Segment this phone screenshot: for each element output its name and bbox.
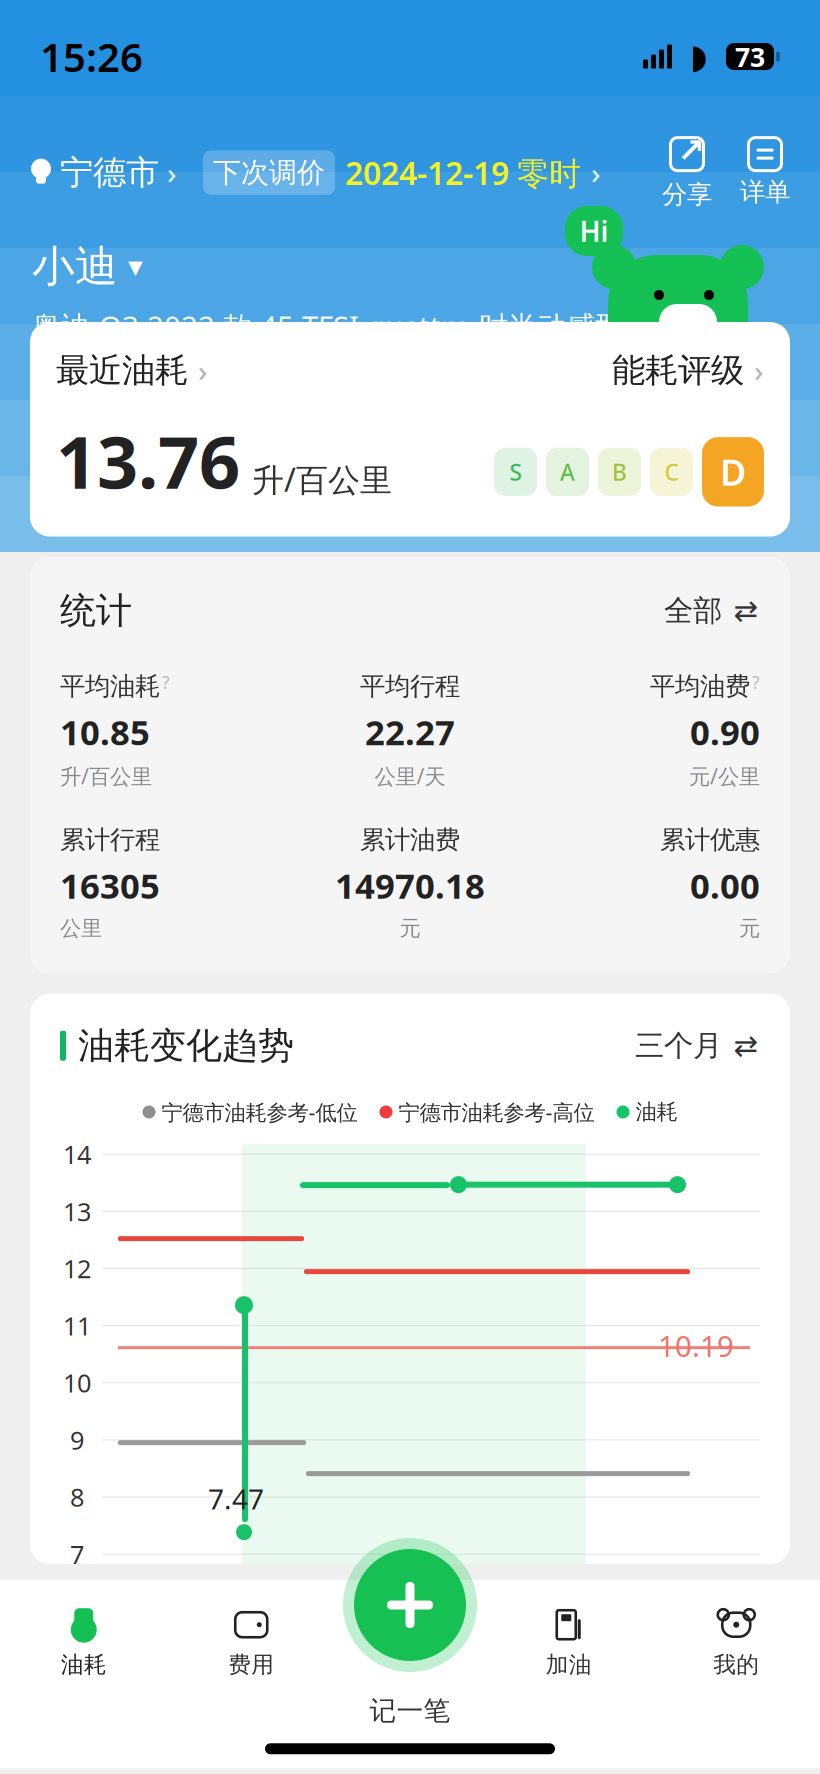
staticText: › [198,351,208,390]
staticText: S [509,457,521,487]
staticText: A [560,457,575,487]
staticText: › [591,153,601,192]
staticText: 10 [63,1366,91,1399]
staticText: 元 [399,915,420,942]
staticText: D [720,448,746,496]
staticText: ⇄ [733,1029,758,1062]
staticText: 13 [63,1194,91,1228]
staticText: B [612,457,627,487]
staticText: 累计优惠 [660,824,760,855]
staticText: ⇄ [733,594,758,627]
button[interactable]: 宁德市 [30,152,177,193]
staticText: 油耗变化趋势 [78,1024,294,1068]
staticText: ? [162,671,170,694]
staticText: 元 [739,915,760,942]
staticText: 13.76 [56,413,240,508]
staticText: 宁德市 [60,152,159,193]
staticText: 8 [70,1480,84,1514]
staticText: 加油 [546,1651,592,1678]
staticText: 累计行程 [60,824,160,855]
staticText: 累计油费 [360,824,460,855]
staticText: 14 [63,1137,91,1171]
staticText: 我的 [713,1651,759,1678]
button[interactable]: 我的 [652,1602,820,1684]
button[interactable]: 三个月 [635,1028,760,1064]
staticText: 7.47 [208,1480,264,1517]
staticText: 73 [735,39,765,74]
staticText: 平均油耗 [60,671,160,702]
staticText: › [754,351,764,390]
staticText: Hi [579,212,608,250]
staticText: 公里 [60,915,102,942]
staticText: ? [752,671,760,694]
button[interactable]: 最近油耗 [56,350,208,391]
staticText: 10.85 [60,709,150,755]
staticText: 宁德市油耗参考-高位 [398,1098,594,1126]
staticText: 油耗 [61,1651,107,1678]
staticText: ◗ [690,38,708,75]
staticText: 油耗 [635,1099,677,1125]
staticText: C [664,457,678,487]
staticText: 2024-12-19 零时 [345,151,581,194]
staticText: ▾ [128,250,143,283]
button[interactable]: 能耗评级 [612,350,764,391]
staticText: 宁德市油耗参考-低位 [161,1098,357,1126]
button[interactable]: 详单 [740,138,790,208]
staticText: 11 [63,1309,91,1342]
staticText: 平均油费 [650,671,750,702]
staticText: 小迪 [32,240,118,293]
staticText: 统计 [60,589,132,633]
staticText: 升/百公里 [60,762,152,790]
staticText: 最近油耗 [56,350,188,391]
button[interactable]: 小迪 [32,240,143,293]
button[interactable]: 记一笔 [343,1538,477,1672]
staticText: 10.19 [658,1326,734,1365]
staticText: 分享 [662,179,712,210]
staticText: 费用 [228,1651,274,1678]
staticText: 元/公里 [689,762,760,790]
staticText: 22.27 [365,709,455,755]
staticText: 能耗评级 [612,350,744,391]
staticText: 奥迪 Q3 2022 款 45 TFSI quattro 时尚动感型 [32,307,624,346]
staticText: 0.00 [690,862,760,908]
button[interactable]: 加油 [485,1602,652,1684]
staticText: 升/百公里 [252,458,392,501]
staticText: 详单 [740,177,790,208]
staticText: 0.90 [690,709,760,755]
staticText: 全部 [664,593,722,629]
staticText: › [167,153,177,192]
staticText: 7 [70,1537,84,1571]
button[interactable]: 下次调价 [203,150,601,195]
button[interactable]: 油耗 [0,1602,167,1684]
staticText: 公里/天 [374,762,445,790]
staticText: 三个月 [635,1028,722,1064]
staticText: 平均行程 [360,671,460,702]
staticText: 下次调价 [213,155,325,190]
button[interactable]: 全部 [664,593,760,629]
button[interactable]: 费用 [167,1602,335,1684]
staticText: 14970.18 [335,862,485,908]
staticText: 16305 [60,862,160,908]
button[interactable]: 分享 [662,135,712,210]
staticText: 15:26 [40,30,143,83]
staticText: 记一笔 [369,1694,450,1727]
staticText: 12 [63,1252,91,1285]
staticText: ↗ [677,131,705,169]
staticText: 9 [70,1423,84,1457]
